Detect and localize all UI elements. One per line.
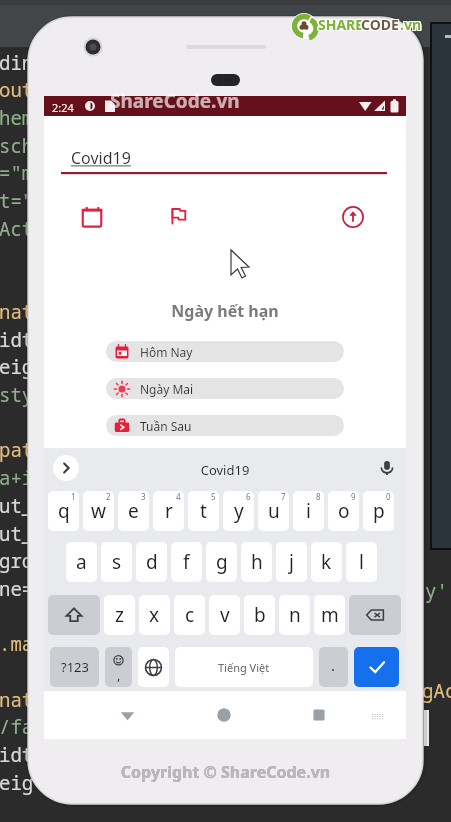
staticText: h <box>251 549 263 575</box>
button[interactable]: b <box>244 595 275 635</box>
button[interactable]: Set date <box>78 202 106 230</box>
staticText: g <box>216 549 228 575</box>
staticText: Copyright © ShareCode.vn <box>0 761 451 783</box>
staticText: CODE <box>362 14 400 33</box>
staticText: .vn <box>401 14 423 33</box>
button[interactable]: l <box>346 542 377 582</box>
button[interactable]: m <box>314 595 345 635</box>
staticText: 2:24 <box>52 100 74 115</box>
staticText: k <box>321 549 332 575</box>
button[interactable]: t <box>188 491 219 531</box>
staticText: Tuần Sau <box>140 418 192 434</box>
staticText: Covid19 <box>71 147 131 169</box>
button[interactable]: Ngày Mai <box>106 378 344 399</box>
button[interactable]: Set priority <box>164 202 192 230</box>
staticText: ?123 <box>61 658 89 676</box>
button[interactable]: e <box>118 491 149 531</box>
button[interactable]: s <box>101 542 132 582</box>
button[interactable]: Back <box>120 708 135 723</box>
staticText: q <box>58 498 70 524</box>
staticText: ne= <box>0 576 34 602</box>
button[interactable]: n <box>279 595 310 635</box>
staticText: 5 <box>211 491 216 502</box>
button[interactable]: x <box>139 595 170 635</box>
staticText: SHARE <box>319 14 365 33</box>
button[interactable]: g <box>206 542 237 582</box>
staticText: ="m <box>0 160 34 186</box>
staticText: din <box>0 50 34 76</box>
staticText: d <box>146 549 158 575</box>
button[interactable]: k <box>311 542 342 582</box>
button[interactable]: h <box>241 542 272 582</box>
staticText: u <box>268 498 280 524</box>
button[interactable]: u <box>258 491 289 531</box>
staticText: idt <box>0 327 34 353</box>
staticText: w <box>91 498 106 524</box>
button[interactable]: f <box>171 542 202 582</box>
staticText: SHARE <box>317 16 363 35</box>
button[interactable]: Voice input <box>376 457 398 479</box>
button[interactable]: z <box>104 595 135 635</box>
staticText: s <box>112 549 122 575</box>
staticText: .vn <box>399 15 421 34</box>
staticText: CODE <box>362 16 400 35</box>
button[interactable]: Save task <box>341 205 365 229</box>
button[interactable]: Hôm Nay <box>106 341 344 362</box>
button[interactable]: p <box>363 491 394 531</box>
staticText: Copyright © ShareCode.vn <box>0 761 451 783</box>
staticText: 6 <box>246 491 251 502</box>
button[interactable]: Backspace <box>349 595 401 635</box>
button[interactable]: Emoji <box>105 647 132 687</box>
button[interactable]: More suggestions <box>53 455 79 481</box>
button[interactable]: o <box>328 491 359 531</box>
button[interactable]: j <box>276 542 307 582</box>
staticText: .vn <box>400 16 422 35</box>
button[interactable]: . <box>319 647 348 687</box>
button[interactable]: Home <box>216 707 232 723</box>
staticText: SHARE <box>318 14 364 33</box>
button[interactable]: y <box>223 491 254 531</box>
staticText: SHARE <box>317 15 363 34</box>
button[interactable]: Done <box>354 647 399 687</box>
button[interactable]: ?123 <box>50 647 99 687</box>
staticText: sch <box>0 133 34 159</box>
staticText: CODE <box>361 16 399 35</box>
staticText: .vn <box>399 14 421 33</box>
staticText: a+i <box>0 465 34 491</box>
button[interactable]: Hide keyboard <box>371 710 384 723</box>
button[interactable]: w <box>83 491 114 531</box>
staticText: SHARE <box>319 16 365 35</box>
button[interactable]: Recents <box>312 708 326 722</box>
button[interactable]: Change language <box>138 647 169 687</box>
staticText: v <box>220 602 230 628</box>
button[interactable]: i <box>293 491 324 531</box>
staticText: .ma <box>0 631 34 657</box>
staticText: .vn <box>400 14 422 33</box>
button[interactable]: v <box>209 595 240 635</box>
staticText: i <box>306 498 311 524</box>
staticText: ut_ <box>0 493 34 519</box>
staticText: b <box>254 602 266 628</box>
button[interactable]: Tiếng Việt <box>175 647 313 687</box>
staticText: t=" <box>0 188 34 214</box>
staticText: m <box>321 602 339 628</box>
staticText: ut_ <box>0 521 34 547</box>
button[interactable]: d <box>136 542 167 582</box>
staticText: y' <box>425 578 448 604</box>
button[interactable]: q <box>48 491 79 531</box>
staticText: . <box>331 655 336 675</box>
staticText: .vn <box>401 15 423 34</box>
staticText: 3 <box>141 491 146 502</box>
staticText: j <box>289 549 294 575</box>
button[interactable]: a <box>66 542 97 582</box>
button[interactable]: Shift <box>48 595 100 635</box>
staticText: nat <box>0 299 34 325</box>
staticText: gAc <box>422 678 451 704</box>
staticText: CODE <box>361 14 399 33</box>
button[interactable]: Tuần Sau <box>106 415 344 436</box>
staticText: f <box>183 549 190 575</box>
button[interactable]: c <box>174 595 205 635</box>
staticText: r <box>165 498 173 524</box>
staticText: pat <box>0 437 34 463</box>
button[interactable]: r <box>153 491 184 531</box>
